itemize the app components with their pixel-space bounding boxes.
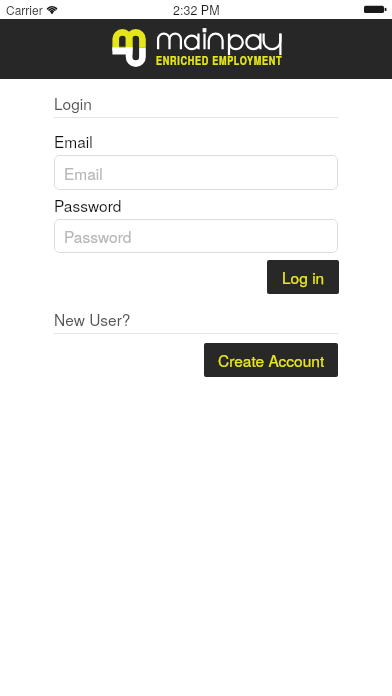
button[interactable]: Create Account (204, 343, 338, 377)
staticText: ENRICHED EMPLOYMENT (156, 51, 282, 68)
staticText: Create Account (218, 349, 325, 371)
button[interactable]: Log in (267, 260, 339, 294)
staticText: Log in (282, 266, 325, 288)
staticText: Carrier (6, 1, 43, 18)
staticText: Login (54, 92, 92, 114)
button[interactable]: Email (54, 155, 338, 190)
button[interactable]: Password (54, 219, 338, 253)
staticText: New User? (54, 308, 131, 330)
staticText: Password (54, 194, 122, 216)
staticText: Password (64, 225, 132, 247)
staticText: Email (64, 162, 103, 184)
staticText: Email (54, 130, 93, 152)
staticText: 2:32 PM (173, 1, 220, 19)
